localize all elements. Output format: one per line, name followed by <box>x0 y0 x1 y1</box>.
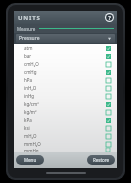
staticText: Restore <box>93 157 110 163</box>
button[interactable]: Pressure <box>16 34 115 43</box>
staticText: ksi <box>24 125 30 131</box>
button[interactable]: kPa <box>14 116 117 124</box>
staticText: hPa <box>24 77 33 83</box>
staticText: kg/m² <box>24 109 37 115</box>
button[interactable]: atm <box>14 44 117 52</box>
staticText: atm <box>24 45 33 51</box>
staticText: kPa <box>24 117 32 123</box>
staticText: bar <box>24 53 32 59</box>
button[interactable]: cmH₂O <box>14 60 117 68</box>
button[interactable]: mH₂O <box>14 132 117 140</box>
button[interactable]: hPa <box>14 76 117 84</box>
button[interactable]: Restore <box>87 155 115 165</box>
staticText: inH₂O <box>24 85 37 91</box>
staticText: Measure <box>17 26 36 32</box>
staticText: ? <box>108 14 111 21</box>
button[interactable]: bar <box>14 52 117 60</box>
staticText: mH₂O <box>24 133 37 139</box>
button[interactable]: kg/m² <box>14 108 117 116</box>
staticText: kg/cm² <box>24 101 39 107</box>
button[interactable]: ksi <box>14 124 117 132</box>
staticText: cmHg <box>24 69 37 75</box>
button[interactable]: Help <box>105 13 114 22</box>
staticText: mmHg <box>24 148 39 152</box>
staticText: UNITS <box>18 14 41 22</box>
staticText: Menu <box>24 157 37 163</box>
button[interactable]: mmH₂O <box>14 140 117 148</box>
staticText: Pressure <box>19 35 40 42</box>
staticText: inHg <box>24 93 35 99</box>
button[interactable]: inHg <box>14 92 117 100</box>
staticText: cmH₂O <box>24 61 39 67</box>
staticText: mmH₂O <box>24 141 41 147</box>
button[interactable]: kg/cm² <box>14 100 117 108</box>
button[interactable]: mmHg <box>14 148 117 152</box>
button[interactable]: Menu <box>16 155 44 165</box>
button[interactable]: inH₂O <box>14 84 117 92</box>
button[interactable]: cmHg <box>14 68 117 76</box>
